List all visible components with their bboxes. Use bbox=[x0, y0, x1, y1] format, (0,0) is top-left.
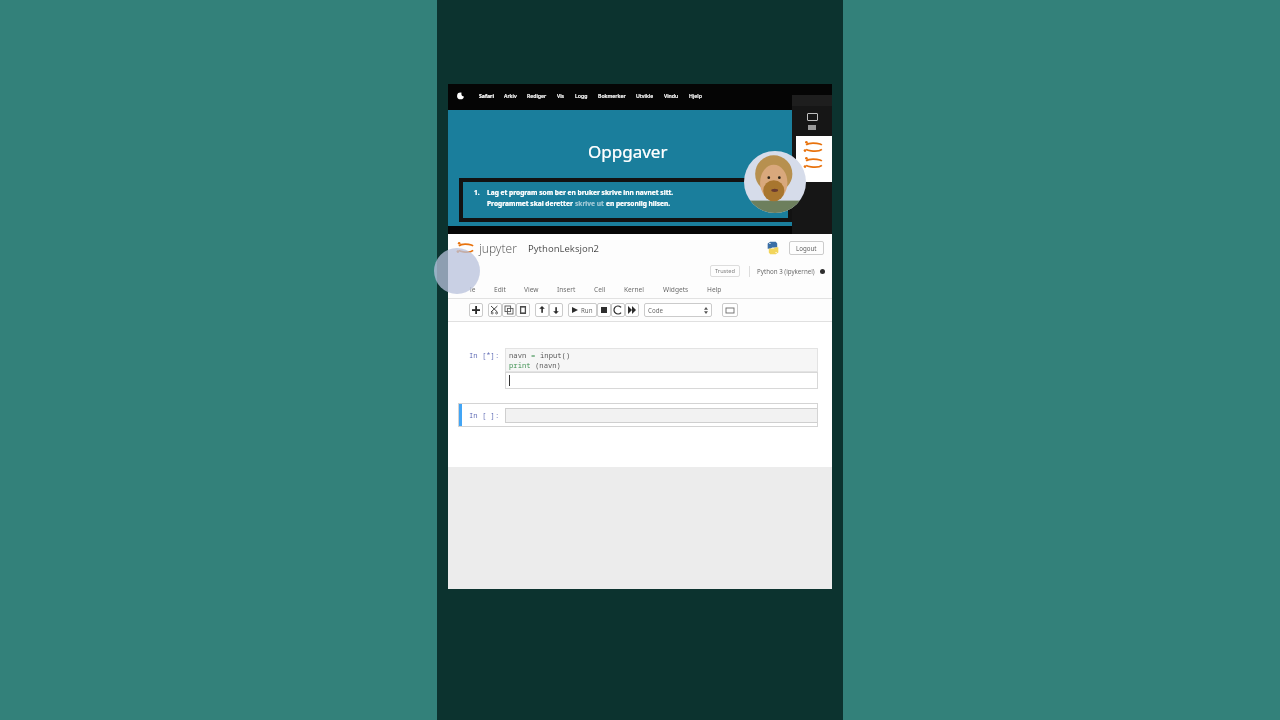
staticText: (navn) bbox=[535, 360, 561, 370]
staticText: In [*]: bbox=[469, 350, 500, 360]
button[interactable]: Cell bbox=[585, 285, 615, 294]
staticText: Vis bbox=[557, 92, 565, 99]
staticText: Safari bbox=[479, 92, 494, 99]
staticText: Trusted bbox=[715, 267, 735, 275]
button[interactable]: View bbox=[515, 285, 548, 294]
staticText: Hjelp bbox=[689, 92, 702, 99]
button[interactable]: In [ ]: bbox=[458, 403, 818, 427]
staticText: PythonLeksjon2 bbox=[528, 242, 599, 255]
staticText: le bbox=[470, 285, 476, 294]
staticText: Programmet skal deretter bbox=[487, 199, 575, 208]
staticText: View bbox=[524, 285, 539, 294]
other: Jupyter bbox=[804, 157, 824, 169]
button[interactable]: Help bbox=[698, 285, 731, 294]
button[interactable]: Toolbar action bbox=[597, 303, 611, 317]
staticText: Utvikle bbox=[636, 92, 654, 99]
button[interactable]: Run bbox=[568, 303, 597, 317]
button[interactable]: Toolbar action bbox=[469, 303, 483, 317]
other: Python bbox=[766, 241, 780, 255]
staticText: jupyter bbox=[479, 240, 517, 256]
staticText: input() bbox=[540, 350, 571, 360]
button[interactable]: Hjelp bbox=[684, 92, 707, 99]
button[interactable]: Command palette bbox=[722, 303, 738, 317]
staticText: print bbox=[509, 360, 535, 370]
staticText: Logg bbox=[575, 92, 588, 99]
staticText: en personlig hilsen. bbox=[606, 199, 671, 208]
button[interactable]: Toolbar action bbox=[488, 303, 502, 317]
button[interactable]: Toolbar action bbox=[611, 303, 625, 317]
staticText: = bbox=[531, 350, 540, 360]
button[interactable]: le bbox=[461, 285, 485, 294]
button[interactable]: Arkiv bbox=[499, 92, 522, 99]
staticText: Lag et program som ber en bruker skrive … bbox=[487, 188, 674, 197]
button[interactable]: Toolbar action bbox=[625, 303, 639, 317]
staticText: Python 3 (ipykernel) bbox=[757, 267, 815, 275]
staticText: Oppgaver bbox=[588, 140, 668, 163]
button[interactable]: Widgets bbox=[654, 285, 698, 294]
staticText: In [ ]: bbox=[469, 410, 500, 420]
staticText: Arkiv bbox=[504, 92, 517, 99]
button[interactable]: Toolbar action bbox=[502, 303, 516, 317]
button[interactable]: Kernel bbox=[615, 285, 654, 294]
button[interactable]: Edit bbox=[485, 285, 515, 294]
button[interactable]: Safari bbox=[474, 92, 499, 99]
staticText: Edit bbox=[494, 285, 506, 294]
other: Jupyter bbox=[804, 141, 824, 153]
button[interactable]: Bokmerker bbox=[593, 92, 631, 99]
other: Jupyter bbox=[457, 242, 475, 254]
button[interactable]: Vis bbox=[552, 92, 570, 99]
staticText: Help bbox=[707, 285, 722, 294]
staticText: Widgets bbox=[663, 285, 689, 294]
button[interactable]: Trusted bbox=[710, 265, 740, 277]
button[interactable]: Insert bbox=[548, 285, 585, 294]
staticText: Rediger bbox=[527, 92, 547, 99]
button[interactable]: Logout bbox=[789, 241, 824, 255]
staticText: navn bbox=[509, 350, 531, 360]
staticText: 1. bbox=[474, 188, 480, 197]
button[interactable]: Rediger bbox=[522, 92, 552, 99]
button[interactable]: Toolbar action bbox=[516, 303, 530, 317]
staticText: Run bbox=[581, 306, 593, 314]
button[interactable]: Toolbar action bbox=[535, 303, 549, 317]
staticText: Kernel bbox=[624, 285, 645, 294]
button[interactable]: Vindu bbox=[659, 92, 684, 99]
button[interactable]: PythonLeksjon2 bbox=[528, 242, 599, 255]
button[interactable]: Code bbox=[644, 303, 712, 317]
button[interactable]: Logg bbox=[570, 92, 593, 99]
staticText: Code bbox=[648, 306, 663, 314]
staticText: Cell bbox=[594, 285, 606, 294]
staticText: skrive ut bbox=[575, 199, 606, 208]
staticText: Logout bbox=[796, 244, 817, 252]
staticText: Bokmerker bbox=[598, 92, 626, 99]
button[interactable]: Toolbar action bbox=[549, 303, 563, 317]
staticText: Insert bbox=[557, 285, 576, 294]
button[interactable]: Utvikle bbox=[631, 92, 659, 99]
staticText: Vindu bbox=[664, 92, 679, 99]
